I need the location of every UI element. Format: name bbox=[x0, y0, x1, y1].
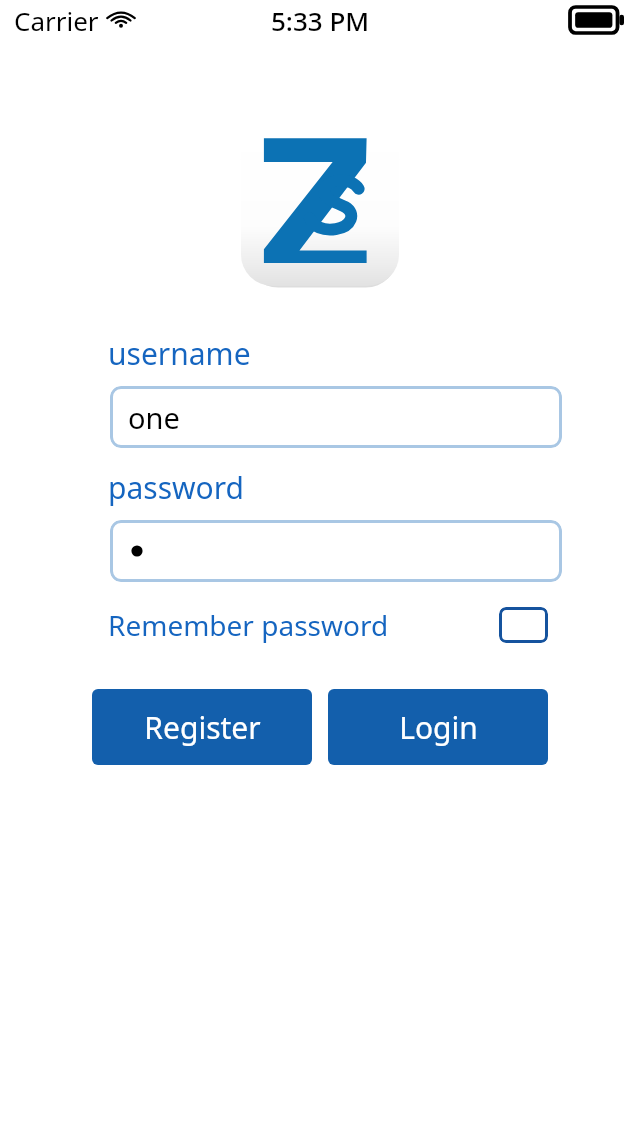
staticText: one bbox=[128, 398, 180, 437]
staticText: Register bbox=[144, 707, 261, 748]
button[interactable]: Login bbox=[328, 689, 548, 765]
staticText: username bbox=[108, 333, 251, 374]
button[interactable]: Remember password checkbox bbox=[499, 607, 548, 643]
staticText: Carrier bbox=[14, 3, 99, 38]
button[interactable] bbox=[110, 520, 562, 582]
staticText: Login bbox=[399, 707, 478, 748]
button[interactable]: Register bbox=[92, 689, 312, 765]
button[interactable]: Remember password bbox=[108, 606, 499, 644]
staticText: Remember password bbox=[108, 606, 389, 644]
staticText: 5:33 PM bbox=[271, 3, 370, 38]
button[interactable]: one bbox=[110, 386, 562, 448]
staticText: password bbox=[108, 467, 244, 508]
